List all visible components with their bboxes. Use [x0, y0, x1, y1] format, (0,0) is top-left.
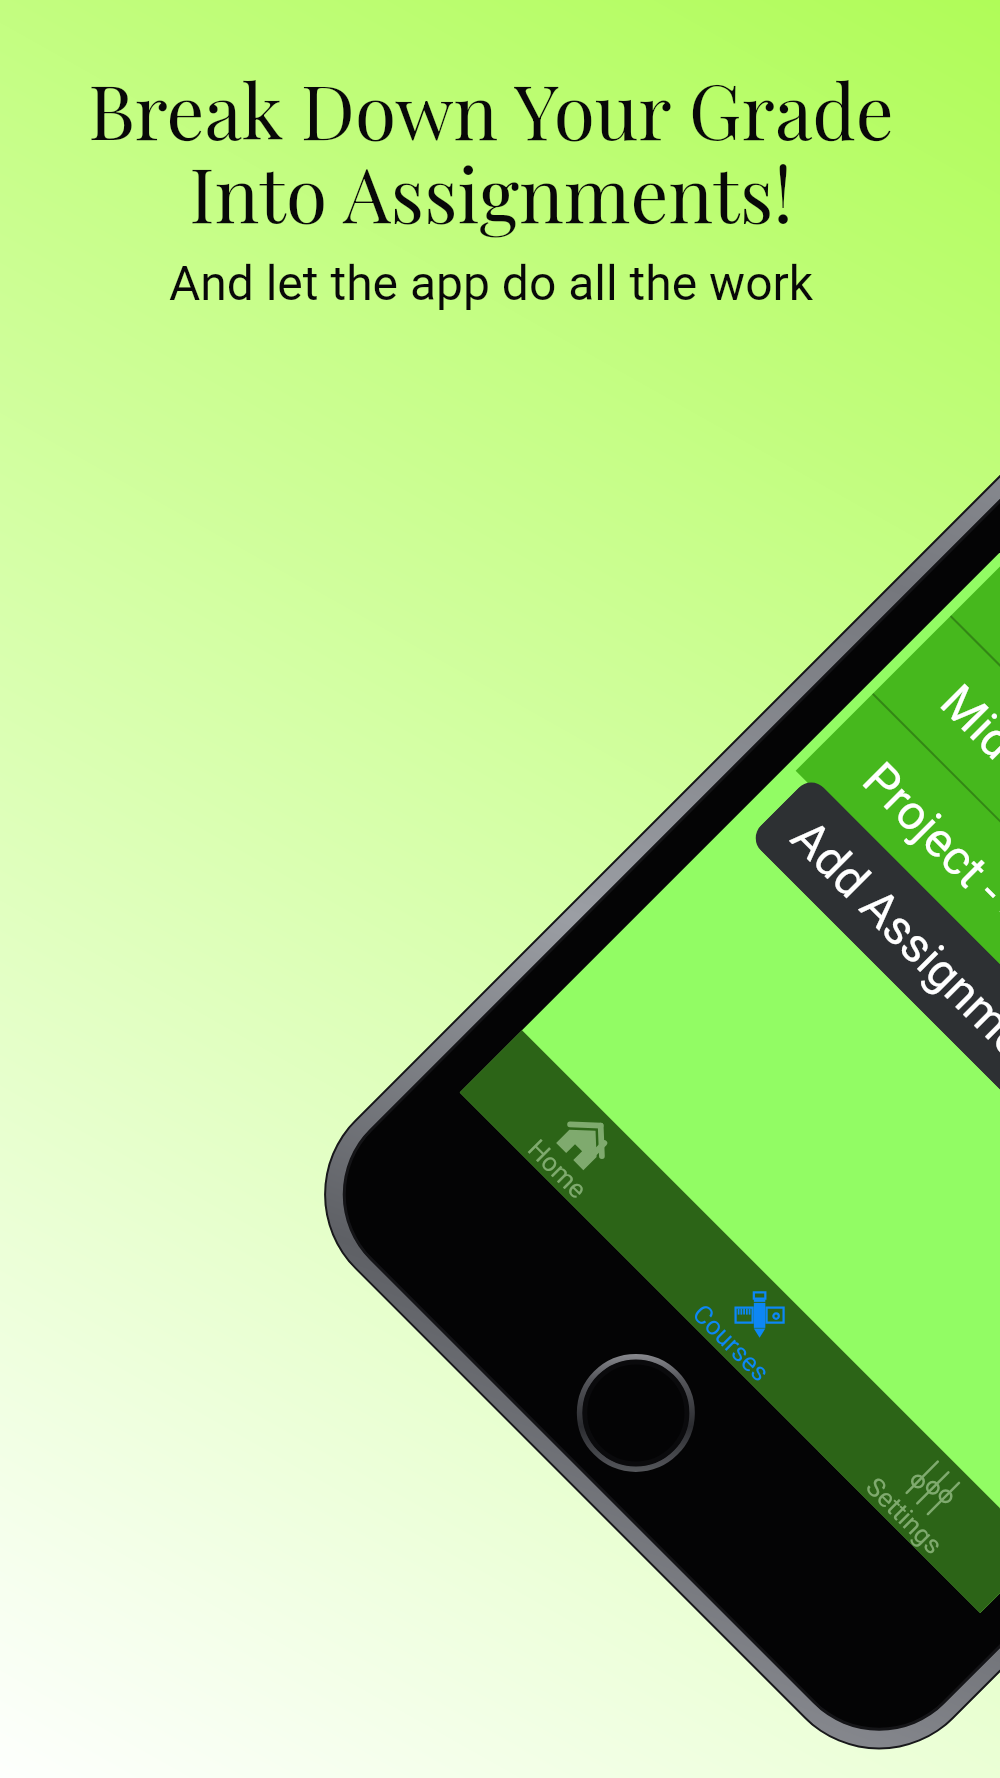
staticText: Home — [522, 1134, 593, 1204]
staticText: Break Down Your Grade Into Assignments! — [10, 59, 972, 241]
staticText: Midterm - 85% — [930, 673, 1000, 930]
button[interactable]: Add Assignment — [748, 775, 1000, 1322]
button[interactable]: Project - 42% — [796, 694, 1000, 1277]
staticText: Add Assignment — [781, 808, 1000, 1098]
staticText: Settings — [860, 1472, 948, 1560]
button[interactable]: Settings — [807, 1378, 1000, 1613]
button[interactable]: Home — [460, 1030, 696, 1267]
staticText: Project - 42% — [852, 751, 1000, 987]
staticText: Courses — [687, 1298, 776, 1387]
staticText: And let the app do all the work — [10, 255, 972, 311]
button[interactable]: Midterm - 85% — [873, 617, 1000, 1199]
button[interactable]: Quiz 2 - 78% — [951, 539, 1000, 1122]
button[interactable]: Courses — [634, 1204, 869, 1440]
